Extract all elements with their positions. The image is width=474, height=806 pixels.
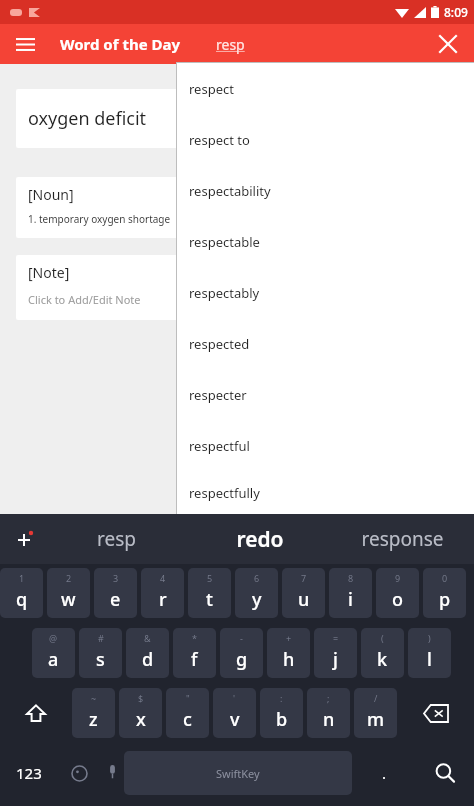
button[interactable]: * [173,628,216,678]
button[interactable]: = [314,628,357,678]
button[interactable]: Search [416,748,474,798]
staticText: ~ [91,692,97,704]
button[interactable]: Emoji [58,748,100,798]
staticText: e [110,587,121,612]
staticText: redo [236,525,284,554]
button[interactable]: 7 [282,568,325,618]
staticText: 1. temporary oxygen shortage [28,212,171,226]
staticText: r [159,587,167,612]
button[interactable]: ; [307,688,350,738]
button[interactable]: response [331,514,474,564]
staticText: n [323,707,335,732]
staticText: h [283,647,295,672]
button[interactable]: respectfully [177,471,474,514]
staticText: 0 [442,572,448,584]
button[interactable]: resp [44,514,188,564]
staticText: c [183,707,192,732]
staticText: y [252,587,262,612]
button[interactable]: 6 [235,568,278,618]
button[interactable]: + [267,628,310,678]
button[interactable]: ) [408,628,451,678]
button[interactable]: respectably [177,267,474,318]
staticText: 9 [395,572,401,584]
button[interactable]: Punctuation [352,748,416,798]
staticText: 4 [160,572,166,584]
button[interactable]: 9 [376,568,419,618]
button[interactable]: # [79,628,122,678]
button[interactable]: 4 [141,568,184,618]
button[interactable]: & [126,628,169,678]
staticText: 5 [207,572,213,584]
button[interactable]: respectful [177,420,474,471]
button[interactable]: Shift [0,688,72,738]
staticText: respectability [189,182,271,200]
button[interactable]: / [354,688,397,738]
staticText: o [392,587,403,612]
staticText: respecter [189,386,247,404]
staticText: . [382,763,387,783]
button[interactable]: : [260,688,303,738]
staticText: respectfully [189,484,260,502]
button[interactable]: 5 [188,568,231,618]
button[interactable]: 3 [94,568,137,618]
staticText: g [236,647,248,672]
staticText: $ [138,692,144,704]
staticText: = [333,632,339,644]
button[interactable]: [Noun] [16,177,458,238]
staticText: f [191,647,198,672]
staticText: respectful [189,437,250,455]
button[interactable]: Voice input [100,748,124,798]
staticText: # [98,632,104,644]
staticText: oxygen deficit [28,106,147,131]
button[interactable]: Close search [432,28,464,60]
button[interactable]: Backspace [397,688,474,738]
button[interactable]: resp [216,30,276,58]
staticText: Word of the Day [60,34,181,54]
button[interactable]: redo [188,514,331,564]
button[interactable]: Space [124,751,352,795]
staticText: 8 [348,572,354,584]
button[interactable]: ~ [72,688,115,738]
staticText: 8:09 [444,4,468,20]
button[interactable]: " [166,688,209,738]
staticText: / [374,692,378,704]
button[interactable]: ' [213,688,256,738]
button[interactable]: Open navigation menu [10,29,40,59]
button[interactable]: oxygen deficit [16,89,458,148]
staticText: respected [189,335,250,353]
button[interactable]: respected [177,318,474,369]
staticText: respect [189,80,234,98]
button[interactable]: respectability [177,165,474,216]
staticText: d [142,647,154,672]
button[interactable]: 0 [423,568,466,618]
button[interactable]: respecter [177,369,474,420]
staticText: b [276,707,288,732]
button[interactable]: 2 [47,568,90,618]
staticText: resp [97,526,136,552]
button[interactable]: respect to [177,114,474,165]
staticText: respectably [189,284,260,302]
staticText: [Note] [28,263,70,282]
button[interactable]: 8 [329,568,372,618]
button[interactable]: [Note] [16,255,458,320]
button[interactable]: 123 [0,748,58,798]
button[interactable]: respect [177,63,474,114]
staticText: s [96,647,105,672]
staticText: - [240,632,243,644]
button[interactable]: ( [361,628,404,678]
staticText: Click to Add/Edit Note [28,292,141,307]
button[interactable]: Add word [0,514,48,564]
button[interactable]: $ [119,688,162,738]
staticText: 3 [113,572,119,584]
staticText: z [89,707,98,732]
staticText: 6 [254,572,260,584]
staticText: 1 [19,572,25,584]
button[interactable]: @ [32,628,75,678]
button[interactable]: - [220,628,263,678]
button[interactable]: 1 [0,568,43,618]
button[interactable]: respectable [177,216,474,267]
staticText: + [286,632,292,644]
staticText: ) [428,632,431,644]
staticText: q [16,587,28,612]
staticText: v [230,707,240,732]
